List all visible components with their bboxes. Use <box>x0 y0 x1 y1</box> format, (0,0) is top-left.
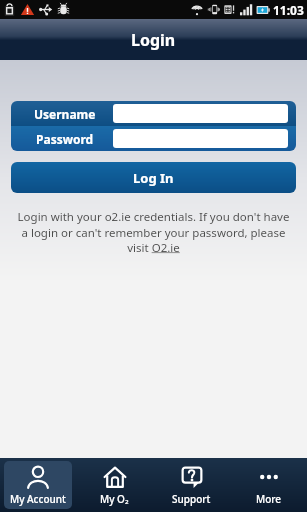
staticText: More <box>256 492 282 506</box>
button[interactable]: Password <box>11 126 296 151</box>
staticText: Login with your o2.ie credentials. If yo… <box>14 209 293 255</box>
staticText: My Account <box>10 492 66 506</box>
staticText: Username <box>34 106 96 122</box>
button[interactable]: My Account <box>4 461 72 509</box>
button[interactable]: Username <box>11 101 296 126</box>
staticText: Support <box>172 492 211 506</box>
staticText: Log In <box>133 169 174 187</box>
staticText: My O₂ <box>100 492 129 506</box>
button[interactable]: Log In <box>11 162 296 193</box>
button[interactable]: More <box>234 461 303 509</box>
staticText: Login <box>131 29 176 51</box>
staticText: Password <box>36 131 94 147</box>
button[interactable]: My O₂ <box>80 461 149 509</box>
button[interactable]: Support <box>157 461 226 509</box>
staticText: 11:03 <box>273 2 304 18</box>
